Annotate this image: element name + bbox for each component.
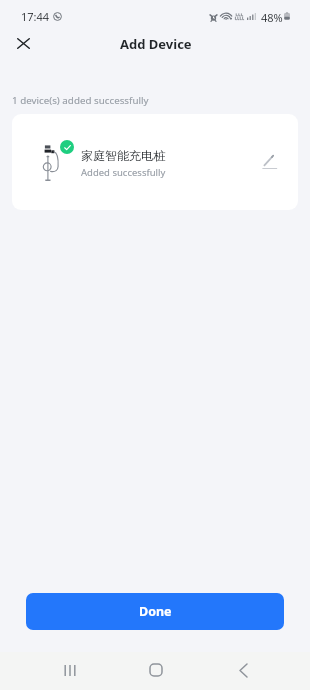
- staticText: 1 device(s) added successfully: [12, 94, 149, 107]
- staticText: Done: [139, 603, 172, 620]
- staticText: 48%: [261, 10, 283, 25]
- button[interactable]: 家庭智能充电桩: [12, 114, 298, 210]
- button[interactable]: Rename device: [257, 149, 283, 175]
- staticText: Added successfully: [81, 166, 166, 179]
- button[interactable]: Back: [221, 648, 265, 690]
- button[interactable]: Home: [134, 648, 178, 690]
- staticText: 17:44: [21, 9, 50, 24]
- staticText: Add Device: [120, 35, 192, 53]
- staticText: 家庭智能充电桩: [81, 148, 165, 163]
- button[interactable]: Done: [26, 593, 284, 630]
- button[interactable]: Recent apps: [48, 648, 92, 690]
- button[interactable]: Close: [9, 29, 37, 57]
